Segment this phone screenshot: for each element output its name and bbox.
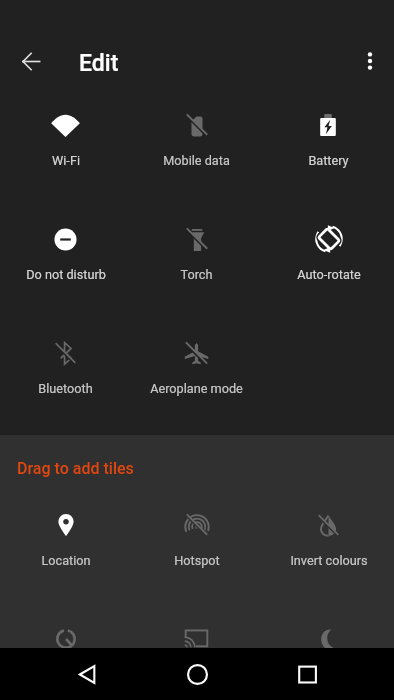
button[interactable] [263, 582, 394, 696]
button[interactable]: Recent apps [281, 648, 333, 700]
button[interactable]: Invert colours [263, 468, 394, 582]
button[interactable]: Back [61, 648, 113, 700]
staticText: Mobile data [163, 153, 230, 168]
button[interactable]: Aeroplane mode [131, 296, 262, 410]
staticText: Drag to add tiles [17, 459, 134, 478]
button[interactable] [131, 582, 262, 696]
staticText: Battery [308, 153, 349, 168]
button[interactable]: Wi-Fi [0, 68, 131, 182]
staticText: Torch [180, 267, 213, 282]
staticText: Aeroplane mode [150, 381, 243, 396]
button[interactable]: Navigate up [13, 43, 49, 79]
staticText: Bluetooth [38, 381, 93, 396]
button[interactable]: Location [0, 468, 131, 582]
staticText: Invert colours [290, 553, 368, 568]
staticText: Auto-rotate [297, 267, 361, 282]
button[interactable]: Battery [263, 68, 394, 182]
staticText: Do not disturb [26, 267, 106, 282]
staticText: Wi-Fi [52, 153, 80, 168]
button[interactable]: Mobile data [131, 68, 262, 182]
button[interactable]: Do not disturb [0, 182, 131, 296]
button[interactable]: More options [352, 43, 388, 79]
button[interactable]: Hotspot [131, 468, 262, 582]
button[interactable]: Drag to add tiles [17, 459, 134, 478]
button[interactable]: Bluetooth [0, 296, 131, 410]
button[interactable]: Home [171, 648, 223, 700]
staticText: Hotspot [174, 553, 220, 568]
staticText: Edit [79, 50, 119, 77]
staticText: Location [41, 553, 91, 568]
button[interactable]: Torch [131, 182, 262, 296]
button[interactable] [0, 582, 131, 696]
button[interactable]: Auto-rotate [263, 182, 394, 296]
